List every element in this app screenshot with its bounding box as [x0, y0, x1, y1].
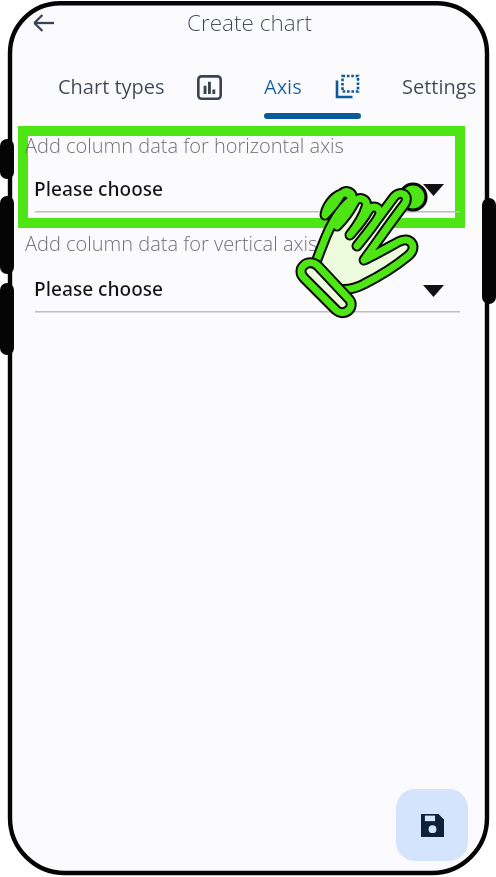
button[interactable]: Chart types — [56, 63, 166, 109]
staticText: Chart types — [58, 73, 165, 100]
staticText: Add column data for horizontal axis — [25, 132, 344, 159]
staticText: Axis — [264, 73, 302, 100]
staticText: Please choose — [34, 176, 163, 202]
staticText: Create chart — [187, 7, 312, 38]
button[interactable]: Axis — [248, 63, 318, 109]
button[interactable] — [26, 224, 460, 317]
button[interactable]: Settings — [389, 63, 489, 109]
staticText: Settings — [402, 73, 477, 100]
button[interactable]: Save — [396, 789, 468, 861]
button[interactable]: Back — [23, 2, 65, 44]
staticText: Add column data for vertical axis — [25, 230, 318, 257]
button[interactable]: Axis selection — [324, 63, 370, 109]
button[interactable] — [26, 126, 460, 217]
staticText: Please choose — [34, 276, 163, 302]
button[interactable]: Chart data — [186, 64, 232, 110]
